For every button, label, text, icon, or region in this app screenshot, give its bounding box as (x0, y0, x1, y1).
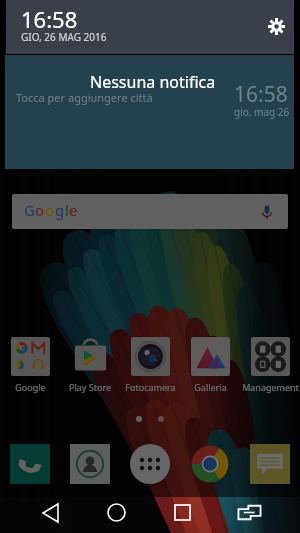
button[interactable]: Home (107, 503, 126, 522)
other: Voice search (257, 202, 277, 222)
staticText: l (65, 200, 69, 220)
button[interactable]: Contacts (70, 444, 110, 484)
staticText: Management (242, 381, 299, 393)
staticText: Galleria (194, 381, 227, 393)
button[interactable]: Nessuna notifica (5, 55, 294, 169)
staticText: Nessuna notifica (90, 71, 216, 93)
staticText: Fotocamera (125, 381, 176, 393)
staticText: GIO, 26 MAG 2016 (21, 30, 107, 44)
button[interactable]: Chrome (190, 444, 230, 484)
staticText: Google (15, 381, 46, 393)
button[interactable]: Messages (250, 444, 290, 484)
staticText: o (35, 200, 45, 220)
staticText: gio, mag 26 (234, 105, 290, 119)
button[interactable]: Google (0, 337, 60, 393)
button[interactable]: Phone (10, 444, 50, 484)
button[interactable]: All apps (130, 444, 170, 484)
button[interactable]: Settings (268, 18, 285, 35)
button[interactable]: G (12, 194, 288, 229)
button[interactable]: Galleria (180, 337, 240, 393)
staticText: G (24, 200, 35, 220)
button[interactable]: Fotocamera (120, 337, 180, 393)
button[interactable]: Play Store (60, 337, 120, 393)
staticText: 16:58 (21, 4, 78, 34)
staticText: Tocca per aggiungere città (16, 90, 153, 105)
staticText: o (45, 200, 55, 220)
staticText: 16:58 (234, 80, 288, 109)
staticText: g (55, 200, 65, 220)
button[interactable]: Recent apps (174, 504, 191, 521)
staticText: e (69, 200, 72, 220)
button[interactable]: Dual window (238, 505, 261, 520)
button[interactable]: Management (240, 337, 300, 393)
staticText: Play Store (69, 381, 111, 393)
button[interactable]: Back (43, 504, 58, 522)
